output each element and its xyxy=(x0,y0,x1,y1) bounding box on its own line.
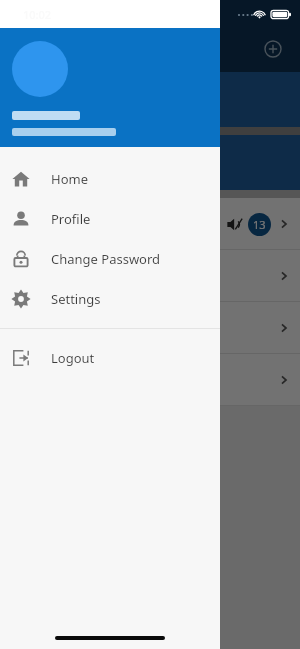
staticText: Settings xyxy=(51,290,101,308)
button[interactable]: Settings xyxy=(0,279,220,319)
staticText: 13 xyxy=(253,217,266,232)
button[interactable]: Settings xyxy=(70,72,300,127)
button[interactable]: Change Password xyxy=(0,239,220,279)
button[interactable] xyxy=(0,250,300,302)
button[interactable]: Add xyxy=(256,32,290,66)
button[interactable]: Home xyxy=(0,159,220,199)
button[interactable]: 13 xyxy=(0,198,300,250)
staticText: Profile xyxy=(51,210,91,228)
staticText: Change Password xyxy=(51,250,161,268)
button[interactable]: Profile xyxy=(0,199,220,239)
staticText: Logout xyxy=(51,349,95,367)
staticText: Home xyxy=(51,170,88,188)
button[interactable]: Settings xyxy=(70,135,300,190)
button[interactable]: Logout xyxy=(0,338,220,378)
button[interactable] xyxy=(0,302,300,354)
button[interactable] xyxy=(0,354,300,406)
